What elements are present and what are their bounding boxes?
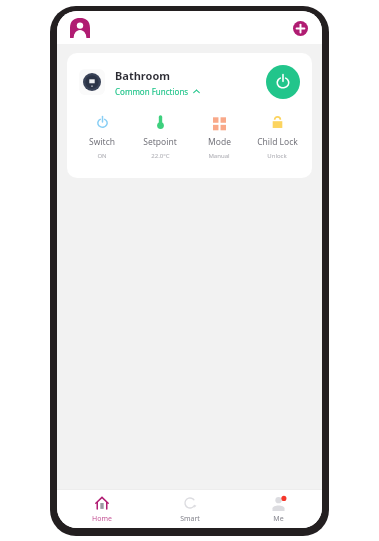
staticText: Mode: [208, 136, 231, 148]
staticText: ON: [97, 152, 107, 160]
staticText: Home: [92, 514, 112, 524]
button[interactable]: Bathroom: [79, 65, 300, 99]
staticText: 22.0°C: [151, 152, 170, 160]
staticText: Manual: [208, 152, 230, 160]
staticText: Child Lock: [257, 136, 298, 148]
button[interactable]: Me: [234, 491, 322, 528]
button[interactable]: Mode: [190, 113, 248, 162]
button[interactable]: Add device: [287, 15, 313, 41]
button[interactable]: Setpoint: [131, 113, 189, 162]
staticText: Common Functions: [115, 86, 189, 97]
button[interactable]: Child Lock: [248, 113, 306, 162]
button[interactable]: Power: [266, 65, 300, 99]
staticText: Switch: [89, 136, 115, 148]
button[interactable]: Smart: [146, 491, 234, 528]
button[interactable]: Home: [57, 491, 146, 528]
staticText: Smart: [180, 514, 200, 524]
button[interactable]: Switch: [73, 113, 131, 162]
staticText: Me: [273, 514, 284, 524]
staticText: Unlock: [267, 152, 287, 160]
button[interactable]: Profile: [66, 14, 94, 42]
staticText: Bathroom: [115, 68, 170, 83]
staticText: Setpoint: [143, 136, 177, 148]
